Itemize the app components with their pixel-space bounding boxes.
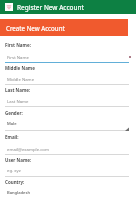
staticText: eg. xyz	[7, 167, 21, 173]
other: Open gender dropdown	[125, 127, 129, 131]
staticText: email@example.com	[7, 146, 49, 152]
button[interactable]	[0, 178, 136, 200]
staticText: Middle Name	[7, 76, 35, 82]
staticText: Middle Name	[5, 65, 35, 71]
staticText: Register New Account	[17, 3, 84, 12]
button[interactable]	[0, 62, 136, 85]
staticText: Country:	[5, 179, 25, 185]
button[interactable]: App icon	[5, 3, 13, 11]
staticText: First Name	[7, 54, 29, 60]
staticText: Last Name:	[5, 87, 31, 93]
button[interactable]	[0, 39, 136, 63]
button[interactable]	[0, 84, 136, 107]
staticText: Create New Account	[6, 24, 65, 32]
staticText: User Name:	[5, 157, 32, 163]
staticText: Gender:	[5, 110, 23, 116]
staticText: Male	[7, 121, 17, 127]
button[interactable]	[0, 131, 136, 155]
staticText: Email:	[5, 134, 19, 140]
button[interactable]	[0, 154, 136, 177]
button[interactable]	[0, 108, 136, 132]
staticText: Last Name	[7, 98, 29, 104]
button[interactable]: Create New Account	[0, 19, 128, 36]
staticText: First Name:	[5, 42, 31, 48]
staticText: Bangladesh	[7, 190, 31, 196]
